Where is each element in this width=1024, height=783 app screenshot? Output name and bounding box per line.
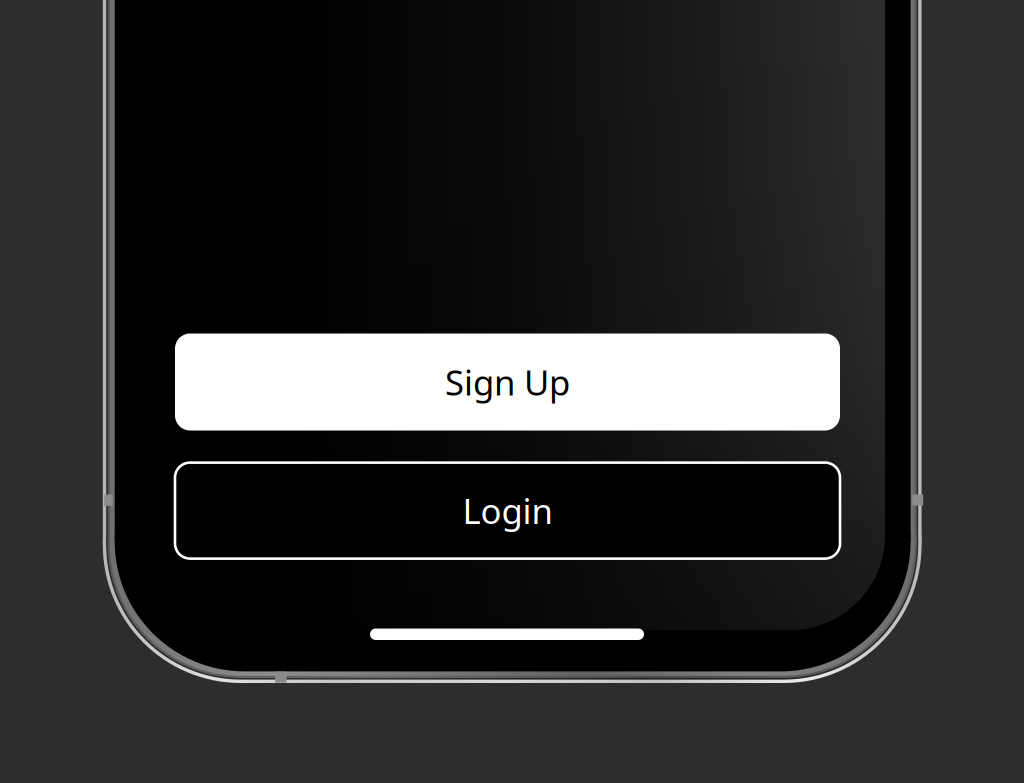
- button[interactable]: Sign Up: [175, 333, 840, 430]
- staticText: Sign Up: [445, 359, 570, 405]
- button[interactable]: Login: [175, 463, 840, 559]
- staticText: Login: [462, 488, 552, 534]
